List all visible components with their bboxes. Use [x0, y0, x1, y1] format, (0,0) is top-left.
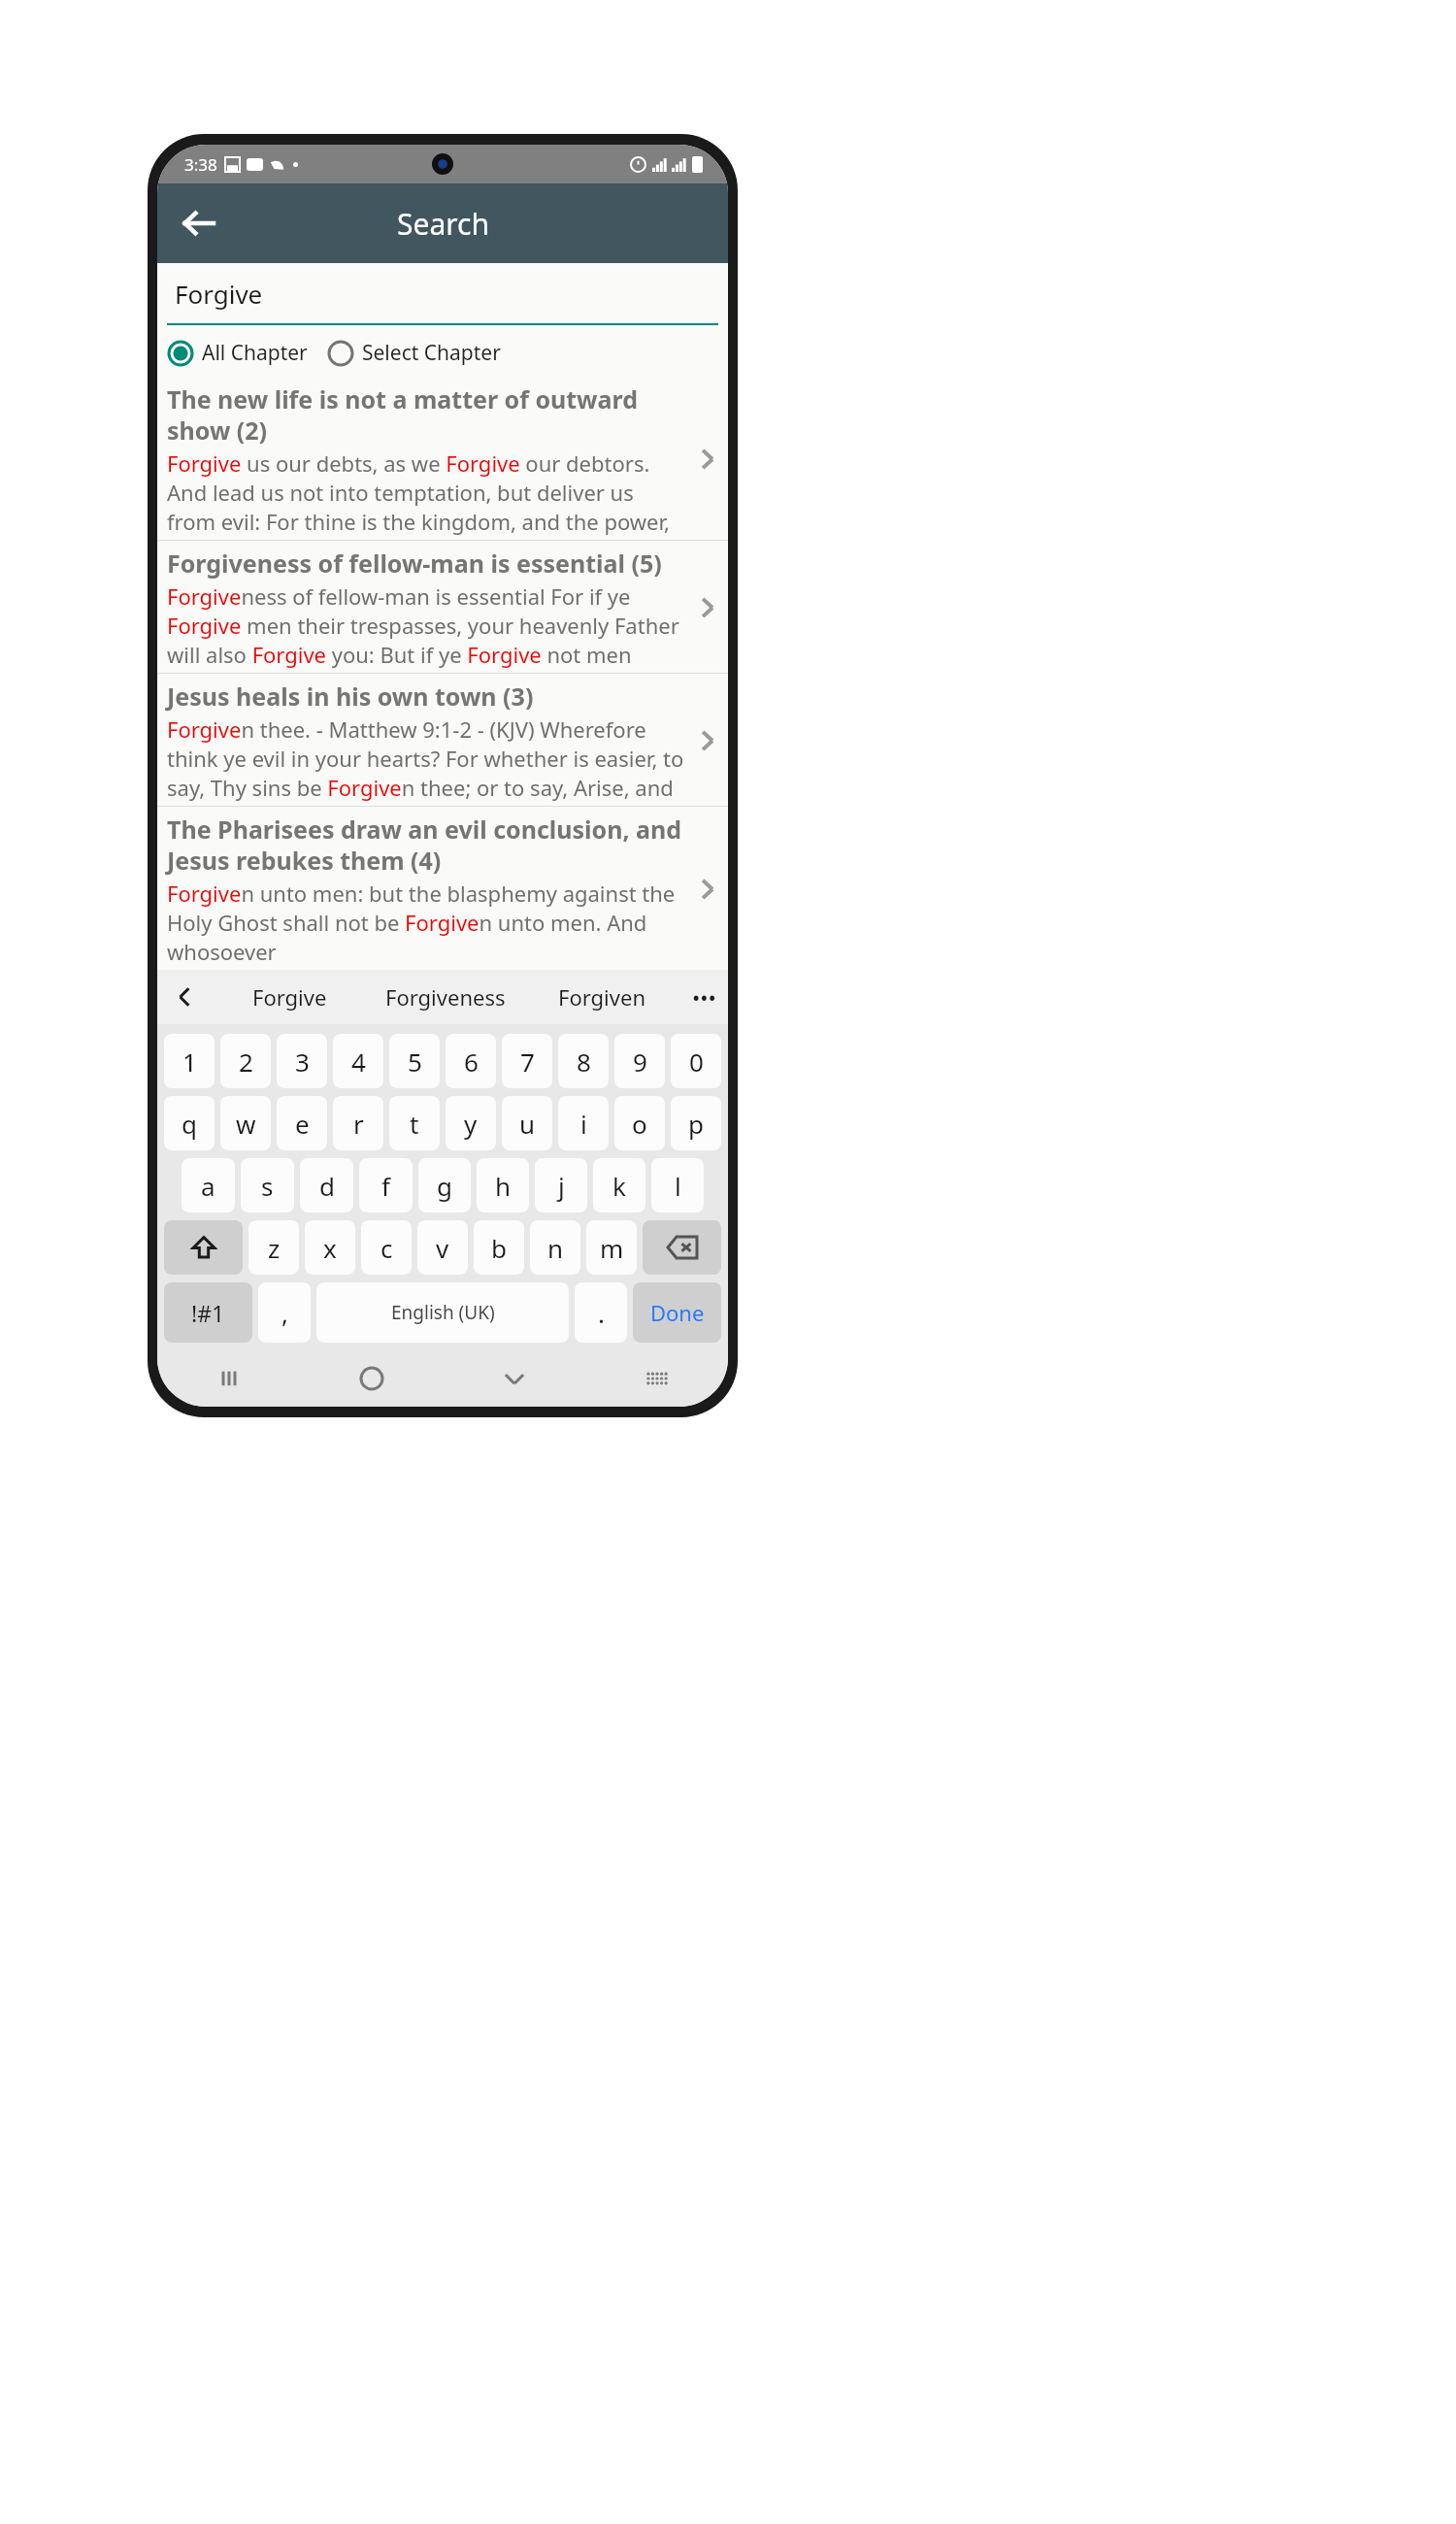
- button[interactable]: The new life is not a matter of outward …: [157, 377, 728, 540]
- button[interactable]: r: [333, 1096, 383, 1150]
- staticText: Select Chapter: [362, 339, 501, 367]
- staticText: 1: [182, 1045, 197, 1079]
- staticText: y: [464, 1107, 478, 1141]
- button[interactable]: l: [651, 1158, 704, 1212]
- staticText: r: [353, 1107, 364, 1141]
- staticText: The Pharisees draw an evil conclusion, a…: [167, 813, 685, 877]
- button[interactable]: !#1: [164, 1282, 252, 1343]
- button[interactable]: y: [446, 1096, 496, 1150]
- button[interactable]: Recents: [157, 1350, 300, 1407]
- button[interactable]: j: [535, 1158, 587, 1212]
- staticText: The new life is not a matter of outward …: [167, 382, 685, 447]
- button[interactable]: o: [614, 1096, 665, 1150]
- staticText: 3:38: [184, 153, 217, 176]
- staticText: k: [612, 1169, 626, 1203]
- button[interactable]: 6: [446, 1034, 496, 1088]
- staticText: Forgiven: [558, 982, 645, 1012]
- button[interactable]: Forgiven: [523, 970, 679, 1024]
- button[interactable]: g: [418, 1158, 471, 1212]
- staticText: o: [632, 1107, 647, 1141]
- staticText: ,: [281, 1296, 288, 1330]
- button[interactable]: Forgiveness of fellow-man is essential (…: [157, 541, 728, 673]
- button[interactable]: m: [586, 1220, 637, 1275]
- button[interactable]: v: [417, 1220, 468, 1275]
- button[interactable]: Hide keyboard: [443, 1350, 585, 1407]
- button[interactable]: 1: [164, 1034, 215, 1088]
- staticText: b: [491, 1231, 507, 1265]
- button[interactable]: a: [182, 1158, 235, 1212]
- staticText: Forgiveness of fellow-man is essential (…: [167, 547, 662, 580]
- button[interactable]: Forgive: [212, 970, 367, 1024]
- button[interactable]: Back: [171, 196, 225, 250]
- staticText: 6: [464, 1045, 479, 1079]
- button[interactable]: s: [241, 1158, 294, 1212]
- button[interactable]: e: [277, 1096, 327, 1150]
- staticText: 7: [520, 1045, 535, 1079]
- staticText: d: [319, 1169, 335, 1203]
- staticText: 3: [295, 1045, 310, 1079]
- button[interactable]: Forgiveness: [367, 970, 523, 1024]
- staticText: x: [323, 1231, 337, 1265]
- staticText: i: [580, 1107, 587, 1141]
- button[interactable]: d: [300, 1158, 353, 1212]
- button[interactable]: 3: [277, 1034, 327, 1088]
- button[interactable]: k: [593, 1158, 645, 1212]
- button[interactable]: 5: [389, 1034, 440, 1088]
- button[interactable]: z: [248, 1220, 299, 1275]
- staticText: 9: [633, 1045, 647, 1079]
- button[interactable]: n: [530, 1220, 580, 1275]
- staticText: Done: [650, 1298, 705, 1327]
- button[interactable]: ,: [258, 1282, 311, 1343]
- button[interactable]: Done: [633, 1282, 721, 1343]
- button[interactable]: 9: [614, 1034, 665, 1088]
- button[interactable]: b: [474, 1220, 524, 1275]
- staticText: Forgiveness: [385, 982, 506, 1012]
- staticText: f: [381, 1169, 390, 1203]
- button[interactable]: More: [679, 970, 728, 1024]
- staticText: Search: [397, 204, 489, 244]
- button[interactable]: Keyboard layout: [585, 1350, 728, 1407]
- staticText: u: [519, 1107, 536, 1141]
- staticText: v: [436, 1231, 449, 1265]
- button[interactable]: x: [305, 1220, 355, 1275]
- button[interactable]: 0: [671, 1034, 721, 1088]
- button[interactable]: Forgive: [167, 263, 718, 323]
- button[interactable]: w: [220, 1096, 271, 1150]
- staticText: Jesus heals in his own town (3): [167, 680, 534, 713]
- button[interactable]: Jesus heals in his own town (3): [157, 674, 728, 806]
- button[interactable]: Select Chapter: [327, 339, 501, 367]
- button[interactable]: Home: [300, 1350, 443, 1407]
- button[interactable]: Backspace: [643, 1220, 721, 1275]
- staticText: p: [688, 1107, 704, 1141]
- staticText: .: [598, 1296, 605, 1330]
- button[interactable]: c: [361, 1220, 412, 1275]
- button[interactable]: 8: [558, 1034, 609, 1088]
- button[interactable]: All Chapter: [167, 339, 314, 367]
- staticText: All Chapter: [202, 339, 308, 367]
- staticText: Forgiven unto men: but the blasphemy aga…: [167, 879, 685, 966]
- staticText: q: [182, 1107, 197, 1141]
- staticText: Forgive: [175, 277, 263, 311]
- button[interactable]: t: [389, 1096, 440, 1150]
- staticText: t: [410, 1107, 419, 1141]
- button[interactable]: Previous: [157, 970, 212, 1024]
- staticText: g: [437, 1169, 452, 1203]
- button[interactable]: p: [671, 1096, 721, 1150]
- staticText: Forgiven thee. - Matthew 9:1-2 - (KJV) W…: [167, 714, 685, 802]
- button[interactable]: 4: [333, 1034, 383, 1088]
- button[interactable]: q: [164, 1096, 215, 1150]
- button[interactable]: The Pharisees draw an evil conclusion, a…: [157, 807, 728, 970]
- staticText: Forgive us our debts, as we Forgive our …: [167, 448, 685, 536]
- button[interactable]: English (UK): [316, 1282, 569, 1343]
- staticText: 2: [239, 1045, 253, 1079]
- button[interactable]: Shift: [164, 1220, 243, 1275]
- staticText: s: [261, 1169, 274, 1203]
- button[interactable]: u: [502, 1096, 552, 1150]
- button[interactable]: .: [575, 1282, 627, 1343]
- button[interactable]: i: [558, 1096, 609, 1150]
- button[interactable]: f: [359, 1158, 413, 1212]
- staticText: n: [547, 1231, 564, 1265]
- button[interactable]: 7: [502, 1034, 552, 1088]
- button[interactable]: 2: [220, 1034, 271, 1088]
- button[interactable]: h: [477, 1158, 529, 1212]
